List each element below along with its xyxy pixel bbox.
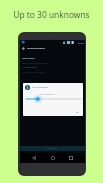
staticText: Equation mode <box>22 66 38 69</box>
staticText: Up to 30 unknowns <box>0 9 103 20</box>
staticText: Linear Equations <box>27 47 46 50</box>
staticText: Matrix mode <box>22 57 35 60</box>
staticText: No. of equations: 4 <box>40 93 55 95</box>
staticText: Type the equations in the box <box>22 71 46 73</box>
button[interactable]: Back <box>29 153 39 163</box>
button[interactable]: Recents <box>66 153 76 163</box>
staticText: i <box>27 86 28 90</box>
staticText: Solve coefficients of the equations <box>22 62 50 64</box>
staticText: CONTINUE <box>47 147 58 150</box>
button[interactable]: Back <box>20 44 27 53</box>
button[interactable]: OK <box>76 111 83 116</box>
button[interactable]: CONTINUE <box>20 146 85 151</box>
staticText: 16:04 <box>78 41 85 44</box>
staticText: No. of equations? <box>32 86 49 89</box>
button[interactable]: Home <box>48 153 58 163</box>
